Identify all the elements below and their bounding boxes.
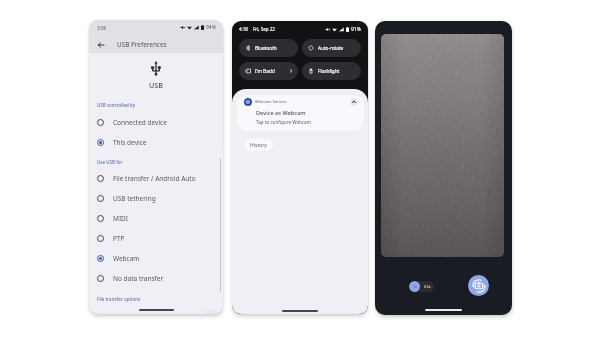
staticText: Auto-rotate [318,45,344,51]
button[interactable]: Webcam Service [237,95,364,131]
button[interactable]: History [244,139,273,151]
staticText: This device [113,138,147,147]
staticText: Fri, Sep 22 [253,26,275,32]
button[interactable]: Auto-rotate [302,39,361,57]
staticText: Tap to configure Webcam [256,119,311,125]
staticText: USB [149,80,163,90]
staticText: 91% [351,26,361,33]
staticText: History [250,142,267,149]
staticText: 3:56 [97,25,107,31]
button[interactable]: Connected device [89,112,223,132]
staticText: 94% [206,24,216,31]
staticText: File transfer / Android Auto [113,174,196,183]
staticText: 4:18 [239,26,248,32]
staticText: Bluetooth [255,45,277,51]
button[interactable]: This device [89,132,223,152]
button[interactable]: Webcam [89,248,223,268]
staticText: Device as Webcam [256,109,306,117]
button[interactable]: Flashlight [302,62,361,80]
staticText: Use USB for [97,159,123,165]
staticText: I'm Back! [255,68,275,74]
button[interactable]: USB tethering [89,188,223,208]
button[interactable]: No data transfer [89,268,223,288]
button[interactable]: Collapse [350,98,358,106]
button[interactable]: Bluetooth [239,39,298,57]
staticText: USB controlled by [97,102,136,108]
button[interactable]: PTP [89,228,223,248]
button[interactable]: Select lens [409,281,434,292]
staticText: Flashlight [318,68,340,74]
staticText: Webcam [113,254,140,263]
staticText: USB tethering [113,194,156,203]
staticText: 1x [413,284,417,289]
button[interactable]: I'm Back! [239,62,298,80]
staticText: File transfer options [97,296,141,302]
staticText: No data transfer [113,274,164,283]
staticText: 0.5x [424,284,431,289]
button[interactable]: Back [95,39,106,50]
staticText: Connected device [113,118,167,127]
staticText: PTP [113,234,125,243]
button[interactable]: Switch camera [468,275,489,296]
button[interactable]: File transfer / Android Auto [89,168,223,188]
staticText: Webcam Service [255,99,287,105]
staticText: USB Preferences [117,40,167,49]
staticText: MIDI [113,214,129,223]
button[interactable]: MIDI [89,208,223,228]
